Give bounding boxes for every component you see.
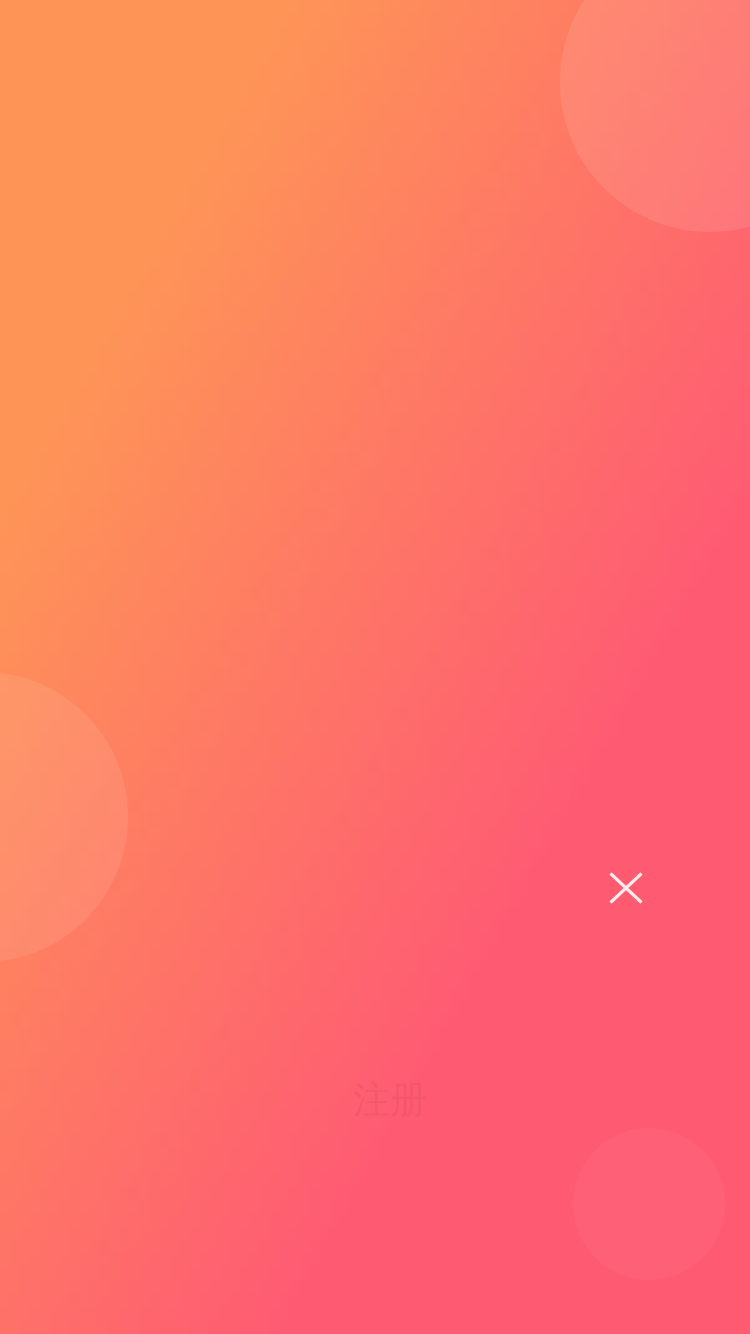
button[interactable]: Close bbox=[594, 856, 658, 920]
staticText: 注册 bbox=[353, 1077, 427, 1123]
